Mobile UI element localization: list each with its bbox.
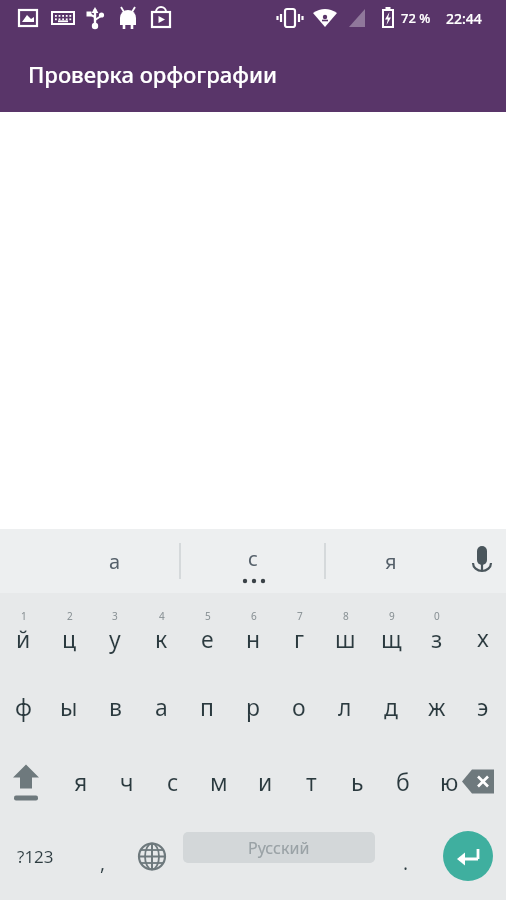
button[interactable]: ь xyxy=(334,744,380,819)
staticText: м xyxy=(210,766,228,797)
button[interactable]: р xyxy=(230,669,276,744)
staticText: а xyxy=(155,691,168,722)
staticText: о xyxy=(292,691,306,722)
button[interactable]: д xyxy=(368,669,414,744)
staticText: 8 xyxy=(343,609,349,623)
button[interactable]: Voice input xyxy=(458,529,506,593)
button[interactable]: 3 xyxy=(92,593,138,669)
button[interactable]: б xyxy=(380,744,426,819)
staticText: й xyxy=(16,623,31,654)
staticText: 0 xyxy=(434,609,440,623)
staticText: к xyxy=(155,623,168,654)
staticText: з xyxy=(431,623,443,654)
staticText: . xyxy=(403,850,409,876)
staticText: г xyxy=(294,623,305,654)
button[interactable]: х xyxy=(460,593,506,669)
button[interactable]: Shift xyxy=(0,744,52,819)
button[interactable]: Backspace xyxy=(454,744,506,819)
staticText: с xyxy=(167,766,179,797)
staticText: т xyxy=(306,766,317,797)
button[interactable]: м xyxy=(196,744,242,819)
staticText: 22:44 xyxy=(446,9,482,28)
button[interactable]: , xyxy=(80,819,126,894)
button[interactable]: я xyxy=(58,744,104,819)
staticText: ф xyxy=(15,691,32,722)
staticText: ш xyxy=(335,623,356,654)
button[interactable]: о xyxy=(276,669,322,744)
staticText: э xyxy=(477,691,489,722)
button[interactable]: 1 xyxy=(0,593,46,669)
staticText: , xyxy=(100,850,106,876)
button[interactable]: ю xyxy=(426,744,472,819)
staticText: ?123 xyxy=(17,845,54,868)
button[interactable]: Проверка орфографии xyxy=(0,36,506,112)
staticText: 1 xyxy=(21,609,27,623)
staticText: ю xyxy=(440,766,459,797)
button[interactable]: ч xyxy=(104,744,150,819)
button[interactable]: а xyxy=(50,529,180,593)
staticText: Проверка орфографии xyxy=(28,59,278,89)
button[interactable]: ф xyxy=(0,669,46,744)
staticText: 72 % xyxy=(401,9,431,27)
staticText: е xyxy=(201,623,214,654)
staticText: 6 xyxy=(251,609,257,623)
button[interactable]: п xyxy=(184,669,230,744)
button[interactable]: . xyxy=(383,819,429,894)
staticText: щ xyxy=(381,623,402,654)
button[interactable]: 7 xyxy=(276,593,322,669)
staticText: я xyxy=(385,548,397,575)
button[interactable]: э xyxy=(460,669,506,744)
staticText: а xyxy=(109,548,121,575)
staticText: и xyxy=(258,766,273,797)
staticText: в xyxy=(109,691,122,722)
staticText: х xyxy=(477,622,489,653)
button[interactable]: 5 xyxy=(184,593,230,669)
button[interactable]: и xyxy=(242,744,288,819)
button[interactable]: Русский xyxy=(183,832,375,863)
staticText: 7 xyxy=(297,609,303,623)
button[interactable]: 6 xyxy=(230,593,276,669)
staticText: я xyxy=(74,766,88,797)
button[interactable]: 0 xyxy=(414,593,460,669)
staticText: л xyxy=(338,691,352,722)
button[interactable]: Enter xyxy=(443,831,493,881)
staticText: ж xyxy=(428,691,446,722)
staticText: у xyxy=(109,623,121,654)
button[interactable]: 4 xyxy=(138,593,184,669)
staticText: ц xyxy=(62,623,77,654)
button[interactable]: с xyxy=(150,744,196,819)
button[interactable]: ж xyxy=(414,669,460,744)
staticText: б xyxy=(396,766,410,797)
staticText: д xyxy=(384,691,398,722)
button[interactable]: т xyxy=(288,744,334,819)
button[interactable]: 2 xyxy=(46,593,92,669)
staticText: Русский xyxy=(248,837,310,859)
button[interactable]: 8 xyxy=(322,593,368,669)
button[interactable]: Change language xyxy=(129,819,175,894)
button[interactable]: с xyxy=(181,529,325,593)
staticText: с xyxy=(248,545,258,572)
staticText: 9 xyxy=(389,609,395,623)
staticText: ь xyxy=(351,766,364,797)
staticText: ч xyxy=(120,766,134,797)
staticText: ы xyxy=(60,691,78,722)
button[interactable]: л xyxy=(322,669,368,744)
button[interactable]: в xyxy=(92,669,138,744)
staticText: р xyxy=(246,691,260,722)
staticText: п xyxy=(200,691,214,722)
staticText: 2 xyxy=(67,609,73,623)
button[interactable]: а xyxy=(138,669,184,744)
button[interactable]: 9 xyxy=(368,593,414,669)
staticText: 3 xyxy=(112,609,118,623)
button[interactable]: ?123 xyxy=(0,819,70,894)
button[interactable]: ы xyxy=(46,669,92,744)
staticText: н xyxy=(246,623,261,654)
button[interactable]: я xyxy=(326,529,456,593)
staticText: 5 xyxy=(205,609,211,623)
staticText: 4 xyxy=(159,609,165,623)
